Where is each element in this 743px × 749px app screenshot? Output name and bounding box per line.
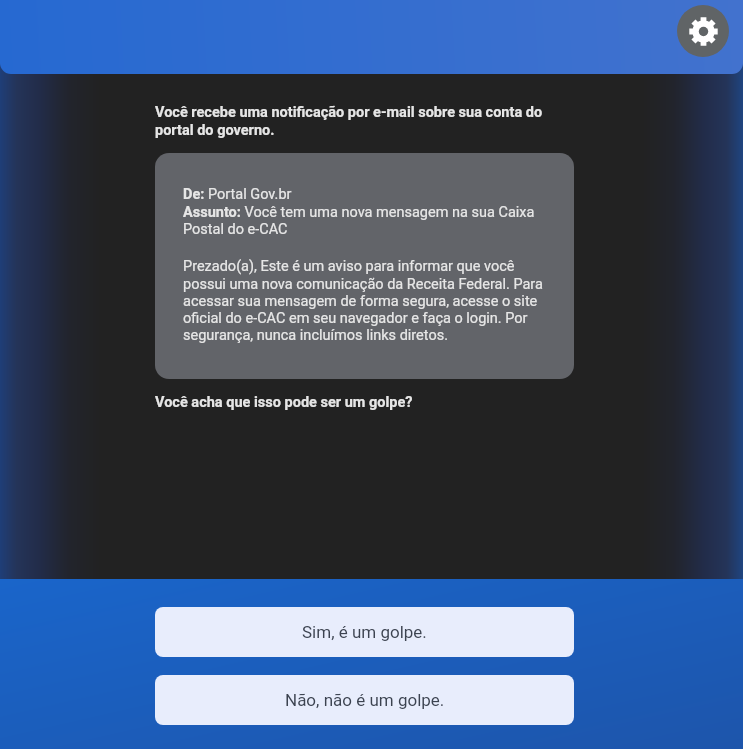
staticText: Sim, é um golpe.	[302, 622, 427, 642]
staticText: Prezado(a), Este é um aviso para informa…	[183, 258, 546, 343]
staticText: Não, não é um golpe.	[285, 690, 445, 710]
staticText: De: Portal Gov.br Assunto: Você tem uma …	[183, 186, 546, 237]
button[interactable]: Sim, é um golpe.	[155, 607, 574, 657]
staticText: Você acha que isso pode ser um golpe?	[155, 394, 413, 411]
button[interactable]: Settings	[677, 5, 729, 57]
button[interactable]: Não, não é um golpe.	[155, 675, 574, 725]
staticText: Você recebe uma notificação por e-mail s…	[155, 104, 574, 138]
